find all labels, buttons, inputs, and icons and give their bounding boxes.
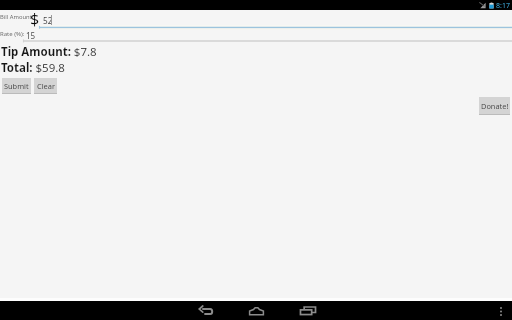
button[interactable]: Submit xyxy=(2,78,31,94)
staticText: 52 xyxy=(43,15,53,26)
staticText: Donate! xyxy=(481,101,509,111)
staticText: Rate (%): xyxy=(0,30,25,38)
staticText: 8:17 xyxy=(496,1,510,11)
staticText: Clear xyxy=(37,81,55,91)
button[interactable]: Tip rate field xyxy=(23,29,512,43)
button[interactable]: Clear xyxy=(34,78,57,94)
staticText: Total: $59.8 xyxy=(1,60,65,76)
staticText: Submit xyxy=(4,81,29,91)
button[interactable]: Back xyxy=(188,301,224,320)
staticText: 15 xyxy=(26,30,36,41)
button[interactable]: Bill amount field xyxy=(39,12,512,30)
button[interactable]: Recent apps xyxy=(290,301,326,320)
staticText: Tip Amount: $7.8 xyxy=(1,44,97,60)
button[interactable]: More options xyxy=(495,303,507,319)
staticText: Bill Amount xyxy=(0,13,32,21)
staticText: $ xyxy=(30,8,40,30)
button[interactable]: Donate! xyxy=(479,97,510,115)
button[interactable]: Home xyxy=(238,301,274,320)
